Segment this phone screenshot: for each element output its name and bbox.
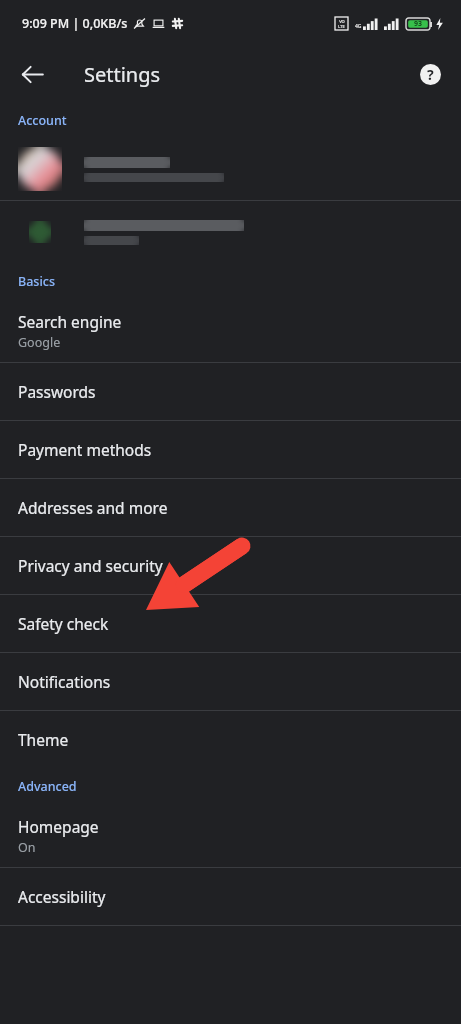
button[interactable]: Privacy and security xyxy=(0,537,461,594)
button[interactable]: Homepage xyxy=(0,804,461,867)
staticText: 9:09 PM | 0,0KB/s xyxy=(22,15,128,32)
staticText: Accessibility xyxy=(18,886,106,907)
staticText: ? xyxy=(427,65,434,84)
button[interactable]: Help and feedback xyxy=(408,52,452,96)
staticText: 93 xyxy=(414,19,423,29)
button[interactable]: Addresses and more xyxy=(0,479,461,536)
staticText: Notifications xyxy=(18,671,111,692)
staticText: Theme xyxy=(18,729,69,750)
staticText: Advanced xyxy=(18,778,77,795)
staticText: Privacy and security xyxy=(18,555,163,576)
staticText: Account xyxy=(18,112,67,129)
button[interactable]: Search engine xyxy=(0,299,461,362)
staticText: LTE xyxy=(338,24,345,29)
button[interactable]: Theme xyxy=(0,711,461,768)
staticText: Basics xyxy=(18,273,55,290)
staticText: Google xyxy=(18,334,61,351)
staticText: Passwords xyxy=(18,381,96,402)
staticText: Payment methods xyxy=(18,439,152,460)
button[interactable]: Notifications xyxy=(0,653,461,710)
staticText: VO xyxy=(339,19,345,24)
staticText: Addresses and more xyxy=(18,497,168,518)
staticText: On xyxy=(18,839,36,856)
button[interactable] xyxy=(0,138,461,200)
button[interactable]: Safety check xyxy=(0,595,461,652)
button[interactable] xyxy=(0,201,461,263)
staticText: 4G xyxy=(355,23,362,30)
button[interactable]: Accessibility xyxy=(0,868,461,925)
staticText: Settings xyxy=(84,61,161,88)
button[interactable]: Payment methods xyxy=(0,421,461,478)
staticText: Safety check xyxy=(18,613,109,634)
button[interactable]: Passwords xyxy=(0,363,461,420)
staticText: Search engine xyxy=(18,311,122,332)
button[interactable]: Back xyxy=(8,50,56,98)
staticText: Homepage xyxy=(18,816,99,837)
